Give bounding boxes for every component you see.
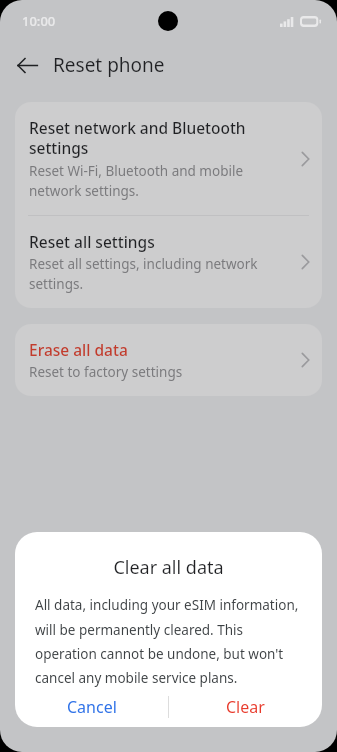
button[interactable]: Cancel [15,687,168,727]
button[interactable]: Erase all data [15,324,322,396]
button[interactable]: Back [6,44,48,86]
staticText: Reset Wi-Fi, Bluetooth and mobile networ… [29,162,291,200]
staticText: 10:00 [22,12,56,30]
button[interactable]: Reset network and Bluetooth settings [15,102,322,215]
staticText: Cancel [67,696,117,718]
staticText: Reset phone [53,52,165,78]
staticText: Reset network and Bluetooth settings [29,117,291,159]
staticText: Reset to factory settings [29,363,183,381]
button[interactable]: Reset all settings [15,216,322,308]
staticText: Erase all data [29,339,128,360]
staticText: Reset all settings [29,231,155,252]
staticText: Reset all settings, including network se… [29,255,291,293]
staticText: All data, including your eSIM informatio… [35,596,302,687]
staticText: Clear [226,696,265,718]
staticText: Clear all data [15,555,322,580]
button[interactable]: Clear [169,687,322,727]
